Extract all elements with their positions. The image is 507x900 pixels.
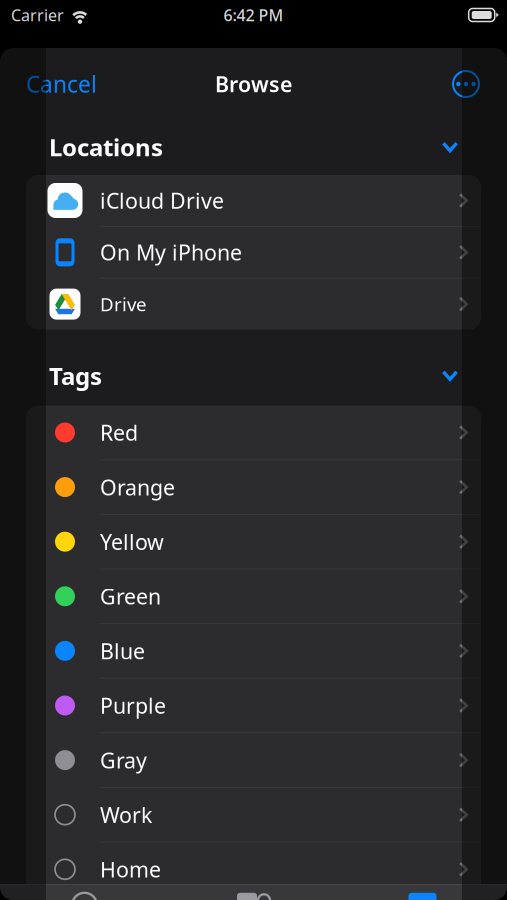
staticText: Work <box>100 800 152 829</box>
button[interactable]: Home <box>26 842 481 896</box>
staticText: Green <box>100 582 161 610</box>
staticText: Browse <box>215 70 292 98</box>
button[interactable]: Purple <box>26 679 481 732</box>
button[interactable]: Collapse Locations <box>429 132 471 162</box>
staticText: Blue <box>100 637 145 665</box>
button[interactable]: Green <box>26 569 481 623</box>
button[interactable]: Gray <box>26 733 481 787</box>
staticText: iCloud Drive <box>100 186 224 215</box>
staticText: Locations <box>49 131 163 163</box>
staticText: Home <box>100 855 161 883</box>
button[interactable]: Orange <box>26 460 481 514</box>
button[interactable]: Work <box>26 788 481 842</box>
button[interactable]: Shared <box>169 893 338 900</box>
button[interactable]: Red <box>26 406 481 459</box>
button[interactable]: Browse <box>338 893 507 900</box>
button[interactable]: Drive <box>26 279 481 330</box>
staticText: Purple <box>100 691 166 720</box>
button[interactable]: Blue <box>26 624 481 678</box>
button[interactable]: Important <box>26 897 481 900</box>
staticText: Yellow <box>100 527 164 556</box>
button[interactable]: More <box>444 62 488 106</box>
staticText: Drive <box>100 292 147 316</box>
button[interactable]: iCloud Drive <box>26 175 481 226</box>
staticText: Red <box>100 418 138 447</box>
staticText: Orange <box>100 473 175 501</box>
staticText: Carrier <box>11 4 64 26</box>
staticText: Tags <box>49 360 102 392</box>
button[interactable]: On My iPhone <box>26 227 481 278</box>
button[interactable]: Collapse Tags <box>429 361 471 391</box>
staticText: On My iPhone <box>100 238 242 266</box>
button[interactable]: Yellow <box>26 515 481 569</box>
staticText: Cancel <box>26 69 97 99</box>
button[interactable]: Cancel <box>16 62 107 106</box>
staticText: Gray <box>100 746 147 774</box>
staticText: 6:42 PM <box>223 4 283 26</box>
button[interactable]: Recents <box>0 893 169 900</box>
